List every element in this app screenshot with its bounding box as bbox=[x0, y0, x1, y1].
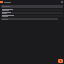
button[interactable] bbox=[1, 5, 63, 8]
button[interactable] bbox=[1, 18, 58, 20]
button[interactable] bbox=[1, 15, 63, 17]
button[interactable]: Menu bbox=[0, 1, 3, 3]
button[interactable]: Add bbox=[58, 59, 63, 63]
button[interactable] bbox=[1, 9, 63, 11]
button[interactable] bbox=[1, 12, 63, 14]
